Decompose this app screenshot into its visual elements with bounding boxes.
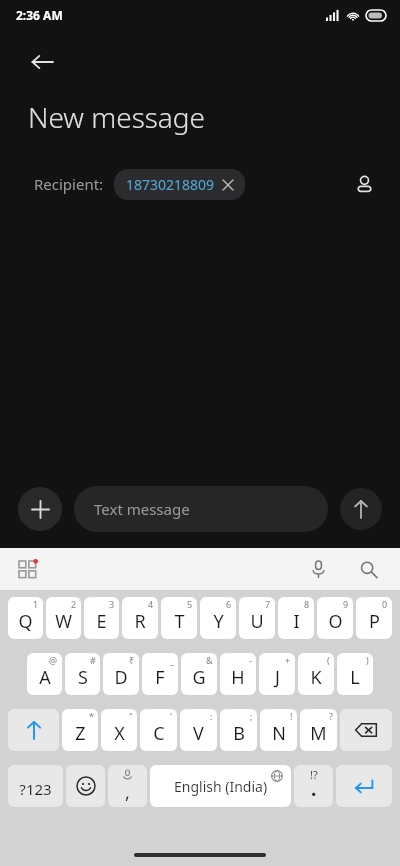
staticText: X [114, 721, 125, 746]
button[interactable]: 2 [46, 597, 81, 639]
button[interactable]: !? [294, 765, 333, 807]
staticText: . [311, 776, 317, 802]
staticText: H [231, 665, 245, 690]
staticText: & [206, 654, 213, 666]
button[interactable]: & [181, 653, 217, 695]
button[interactable]: " [101, 709, 137, 751]
staticText: English (India) [174, 777, 268, 796]
button[interactable]: Back [20, 40, 64, 84]
button[interactable]: @ [27, 653, 62, 695]
button[interactable] [340, 709, 392, 751]
staticText: !? [310, 767, 318, 782]
button[interactable]: 5 [161, 597, 197, 639]
staticText: G [192, 665, 206, 690]
button[interactable]: ! [260, 709, 297, 751]
staticText: ! [290, 710, 293, 722]
button[interactable]: _ [142, 653, 178, 695]
staticText: 2:36 AM [16, 7, 63, 23]
staticText: " [129, 710, 133, 722]
button[interactable]: , [108, 765, 147, 807]
staticText: ' [170, 710, 173, 722]
button[interactable]: - [220, 653, 256, 695]
staticText: ? [329, 710, 333, 722]
staticText: V [193, 721, 204, 746]
button[interactable]: ) [337, 653, 373, 695]
button[interactable]: ? [300, 709, 337, 751]
button[interactable]: 1 [8, 597, 43, 639]
staticText: ₹ [129, 654, 135, 666]
button[interactable]: * [62, 709, 98, 751]
staticText: S [78, 665, 88, 690]
staticText: 4 [148, 598, 154, 610]
button[interactable]: 18730218809 [114, 169, 245, 200]
button[interactable]: 9 [317, 597, 353, 639]
staticText: 3 [109, 598, 115, 610]
staticText: M [310, 721, 327, 746]
button[interactable]: + [259, 653, 295, 695]
staticText: Y [213, 609, 224, 634]
staticText: ( [327, 654, 330, 666]
staticText: L [350, 665, 360, 690]
staticText: K [310, 665, 322, 690]
button[interactable]: Add attachment [18, 487, 62, 531]
button[interactable]: Contacts [344, 164, 384, 204]
staticText: 2 [71, 598, 77, 610]
staticText: P [369, 609, 380, 634]
staticText: ) [366, 654, 369, 666]
staticText: C [153, 721, 165, 746]
staticText: 1 [33, 598, 39, 610]
button[interactable]: ( [298, 653, 334, 695]
staticText: Text message [94, 499, 190, 519]
button[interactable]: Send [340, 488, 382, 530]
staticText: Q [18, 609, 33, 634]
button[interactable]: Text message [74, 486, 328, 532]
staticText: T [174, 609, 185, 634]
staticText: U [250, 609, 264, 634]
button[interactable]: 4 [122, 597, 158, 639]
button[interactable]: # [65, 653, 100, 695]
staticText: New message [28, 98, 206, 136]
button[interactable]: ?123 [8, 765, 63, 807]
button[interactable]: Keyboard menu [10, 552, 44, 586]
button[interactable] [66, 765, 105, 807]
staticText: _ [170, 654, 174, 666]
button[interactable]: Search [352, 553, 384, 585]
staticText: D [114, 665, 128, 690]
staticText: 18730218809 [126, 175, 215, 194]
staticText: + [285, 654, 291, 666]
staticText: * [89, 710, 94, 722]
staticText: E [96, 609, 107, 634]
button[interactable] [336, 765, 392, 807]
staticText: 8 [304, 598, 310, 610]
staticText: 6 [226, 598, 232, 610]
staticText: 5 [187, 598, 193, 610]
staticText: I [293, 609, 300, 634]
staticText: O [328, 609, 343, 634]
staticText: N [272, 721, 286, 746]
staticText: Recipient: [34, 174, 104, 194]
button[interactable]: English (India) [150, 765, 291, 807]
staticText: W [55, 609, 72, 634]
staticText: , [125, 780, 130, 805]
button[interactable]: Voice input [302, 553, 334, 585]
button[interactable]: ; [220, 709, 257, 751]
button[interactable]: 7 [239, 597, 275, 639]
staticText: A [39, 665, 51, 690]
button[interactable]: 0 [356, 597, 392, 639]
staticText: R [134, 609, 146, 634]
staticText: ; [250, 710, 253, 722]
button[interactable]: ₹ [103, 653, 139, 695]
staticText: 0 [382, 598, 388, 610]
staticText: 9 [343, 598, 349, 610]
button[interactable]: ' [140, 709, 177, 751]
staticText: J [275, 665, 280, 690]
staticText: # [90, 654, 96, 666]
button[interactable]: 8 [278, 597, 314, 639]
button[interactable]: 3 [84, 597, 119, 639]
button[interactable]: : [180, 709, 217, 751]
staticText: 7 [265, 598, 271, 610]
button[interactable]: 6 [200, 597, 236, 639]
staticText: @ [49, 654, 58, 666]
staticText: ?123 [19, 779, 52, 799]
button[interactable] [8, 709, 59, 751]
